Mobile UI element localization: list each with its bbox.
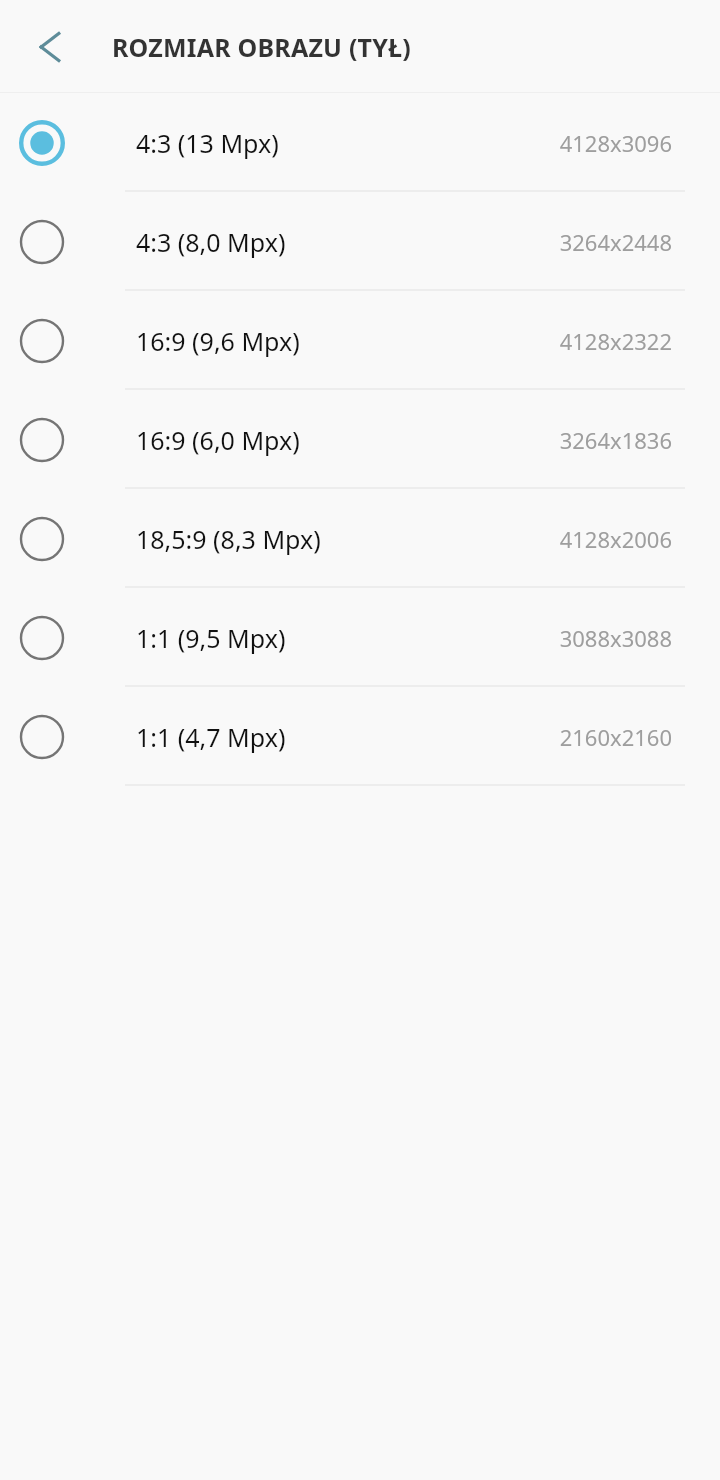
button[interactable]: 18,5:9 (8,3 Mpx) bbox=[0, 489, 720, 588]
staticText: ROZMIAR OBRAZU (TYŁ) bbox=[112, 30, 412, 64]
staticText: 18,5:9 (8,3 Mpx) bbox=[136, 522, 321, 556]
staticText: 3264x1836 bbox=[559, 425, 672, 455]
staticText: 4:3 (8,0 Mpx) bbox=[136, 225, 286, 259]
button[interactable]: 16:9 (6,0 Mpx) bbox=[0, 390, 720, 489]
staticText: 3088x3088 bbox=[559, 623, 672, 653]
button[interactable]: Back bbox=[0, 0, 104, 93]
staticText: 2160x2160 bbox=[559, 722, 672, 752]
staticText: 16:9 (9,6 Mpx) bbox=[136, 324, 300, 358]
button[interactable]: 16:9 (9,6 Mpx) bbox=[0, 291, 720, 390]
staticText: 4:3 (13 Mpx) bbox=[136, 126, 279, 160]
staticText: 4128x3096 bbox=[559, 128, 672, 158]
button[interactable]: 4:3 (8,0 Mpx) bbox=[0, 192, 720, 291]
staticText: 4128x2006 bbox=[559, 524, 672, 554]
button[interactable]: 4:3 (13 Mpx) bbox=[0, 93, 720, 192]
staticText: 1:1 (9,5 Mpx) bbox=[136, 621, 286, 655]
staticText: 4128x2322 bbox=[559, 326, 672, 356]
staticText: 3264x2448 bbox=[559, 227, 672, 257]
staticText: 16:9 (6,0 Mpx) bbox=[136, 423, 300, 457]
button[interactable]: 1:1 (9,5 Mpx) bbox=[0, 588, 720, 687]
button[interactable]: 1:1 (4,7 Mpx) bbox=[0, 687, 720, 786]
staticText: 1:1 (4,7 Mpx) bbox=[136, 720, 286, 754]
